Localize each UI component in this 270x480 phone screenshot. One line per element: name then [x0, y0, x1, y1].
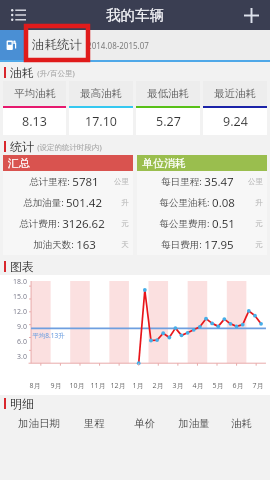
- staticText: 12.0: [13, 307, 27, 317]
- staticText: 5781: [72, 174, 99, 190]
- staticText: 加油量: [178, 417, 210, 430]
- staticText: 我的车辆: [106, 6, 164, 24]
- staticText: 元: [255, 240, 263, 249]
- staticText: 升: [121, 198, 129, 207]
- staticText: 163: [76, 237, 96, 253]
- button[interactable]: 单位消耗: [137, 155, 267, 255]
- staticText: 图表: [10, 259, 34, 274]
- staticText: 天: [121, 240, 129, 249]
- staticText: 8月: [29, 381, 41, 391]
- staticText: 1月: [132, 381, 144, 391]
- staticText: 油耗统计: [32, 37, 82, 53]
- staticText: 5.27: [156, 113, 181, 130]
- staticText: 元: [121, 219, 129, 228]
- staticText: 里程: [84, 417, 105, 430]
- button[interactable]: Menu: [0, 0, 36, 30]
- staticText: 18.0: [13, 277, 27, 287]
- staticText: 9.24: [223, 113, 248, 130]
- button[interactable]: 最低油耗: [136, 81, 200, 135]
- staticText: 4月: [192, 381, 204, 391]
- staticText: 单位消耗: [142, 156, 186, 170]
- staticText: 2014.08-2015.07: [87, 40, 149, 51]
- button[interactable]: 最近油耗: [203, 81, 267, 135]
- staticText: 35.47: [204, 174, 234, 190]
- button[interactable]: 汇总: [3, 155, 133, 255]
- staticText: 5月: [212, 381, 224, 391]
- staticText: (升/百公里): [37, 68, 75, 78]
- staticText: 0.51: [212, 216, 235, 232]
- button[interactable]: 最高油耗: [69, 81, 133, 135]
- staticText: 每日费用:: [161, 238, 202, 251]
- staticText: 每公里油耗:: [159, 196, 210, 209]
- staticText: 总加油量:: [23, 196, 64, 209]
- staticText: 17.95: [204, 237, 234, 253]
- button[interactable]: 油耗统计: [0, 30, 270, 60]
- staticText: 0.08: [212, 195, 235, 211]
- staticText: 12月: [110, 381, 126, 391]
- staticText: 9月: [50, 381, 62, 391]
- staticText: 总计里程:: [29, 175, 70, 188]
- staticText: (设定的统计时段内): [37, 142, 102, 152]
- button[interactable]: Add: [232, 0, 270, 30]
- staticText: 明细: [10, 396, 34, 411]
- staticText: 每日里程:: [161, 175, 202, 188]
- staticText: 油耗: [231, 417, 252, 430]
- staticText: 17.10: [85, 113, 117, 130]
- staticText: 6.0: [17, 337, 27, 347]
- staticText: 10月: [69, 381, 85, 391]
- staticText: 9.0: [17, 322, 27, 332]
- staticText: 平均8.13升: [32, 331, 65, 340]
- staticText: 最低油耗: [147, 87, 189, 100]
- staticText: 元: [255, 219, 263, 228]
- staticText: 平均油耗: [14, 87, 56, 100]
- staticText: 油耗: [10, 65, 34, 80]
- staticText: 15.0: [13, 292, 27, 302]
- staticText: 升: [255, 198, 263, 207]
- staticText: 8.13: [22, 113, 47, 130]
- button[interactable]: 平均油耗: [3, 81, 66, 135]
- staticText: 汇总: [8, 156, 30, 170]
- staticText: 公里: [114, 177, 129, 186]
- staticText: 统计: [10, 139, 34, 154]
- staticText: 2月: [152, 381, 164, 391]
- staticText: 3126.62: [62, 216, 105, 232]
- staticText: 6月: [232, 381, 244, 391]
- staticText: 3.0: [17, 352, 27, 362]
- staticText: 7月: [252, 381, 264, 391]
- staticText: 3月: [172, 381, 184, 391]
- staticText: 最高油耗: [80, 87, 122, 100]
- staticText: 每公里费用:: [159, 217, 210, 230]
- staticText: 单价: [134, 417, 155, 430]
- staticText: 11月: [90, 381, 106, 391]
- staticText: 最近油耗: [214, 87, 256, 100]
- staticText: 公里: [248, 177, 263, 186]
- staticText: 总计费用:: [19, 217, 60, 230]
- staticText: 加油天数:: [33, 238, 74, 251]
- staticText: 加油日期: [18, 417, 60, 430]
- staticText: 501.42: [66, 195, 102, 211]
